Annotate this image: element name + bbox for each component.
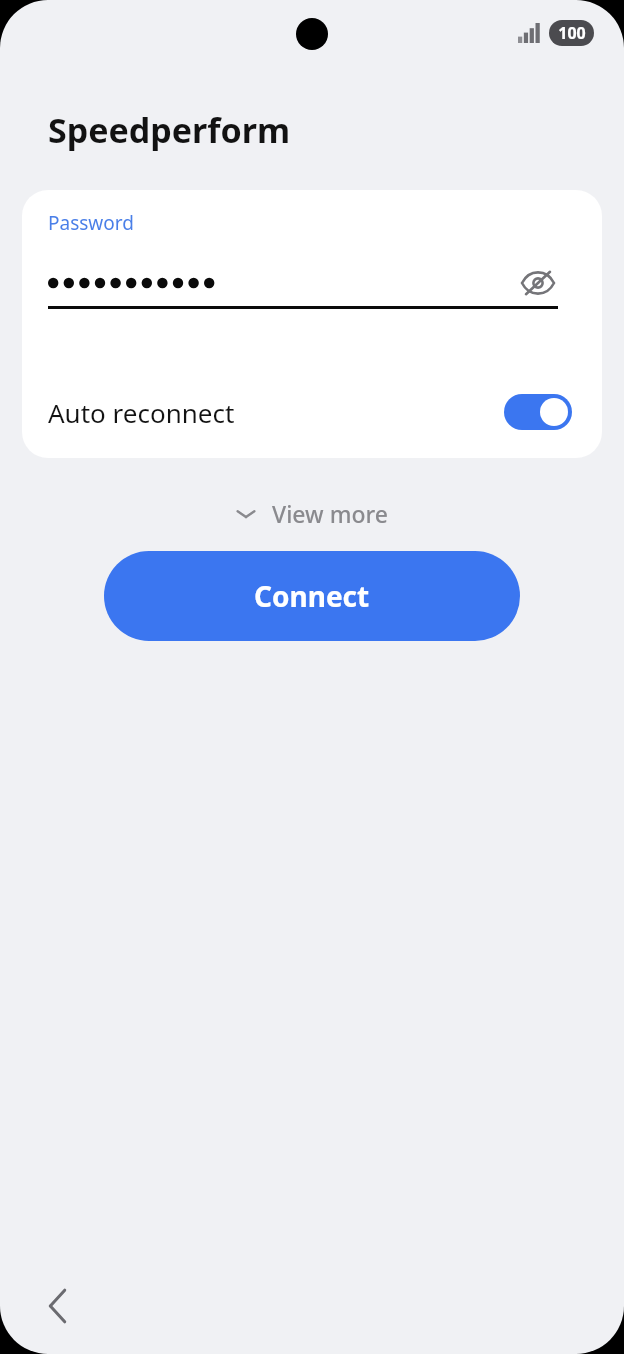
button[interactable]: Connect xyxy=(104,551,520,641)
button[interactable]: Auto reconnect xyxy=(22,387,602,437)
button[interactable]: Back xyxy=(30,1278,86,1334)
button[interactable]: Show password xyxy=(518,263,558,303)
button[interactable]: Auto reconnect toggle xyxy=(504,394,572,430)
staticText: Auto reconnect xyxy=(48,395,235,430)
staticText: Password xyxy=(48,210,134,236)
staticText: View more xyxy=(272,498,388,529)
staticText: Speedperform xyxy=(48,107,291,153)
staticText: 100 xyxy=(558,22,586,44)
button[interactable]: View more xyxy=(226,494,398,533)
staticText: Connect xyxy=(254,577,370,615)
